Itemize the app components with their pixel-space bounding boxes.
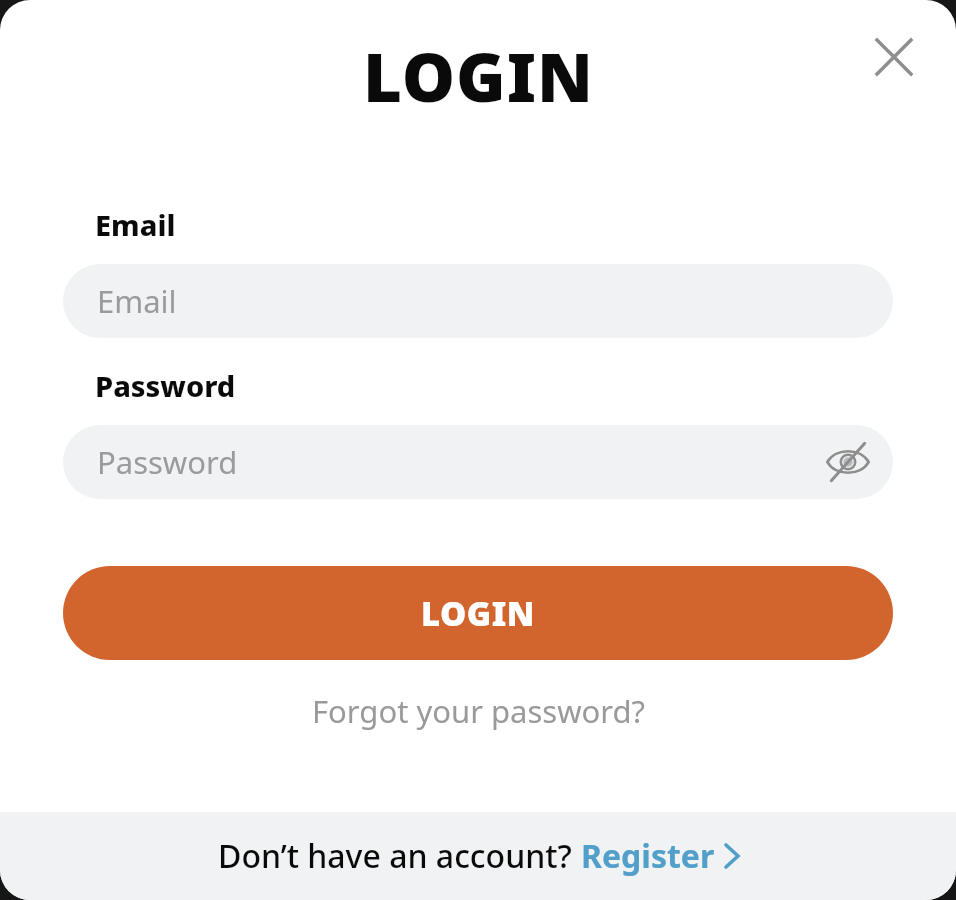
staticText: Register [581, 834, 715, 878]
staticText: Password [97, 441, 238, 483]
button[interactable]: Don’t have an account? [0, 812, 956, 900]
staticText: Email [95, 205, 176, 244]
button[interactable]: Password [63, 425, 893, 499]
button[interactable]: Close [858, 21, 930, 93]
button[interactable]: Email [63, 264, 893, 338]
staticText: Forgot your password? [312, 690, 645, 732]
button[interactable]: LOGIN [63, 566, 893, 660]
staticText: Email [97, 280, 177, 322]
button[interactable]: Forgot your password? [63, 684, 893, 738]
button[interactable]: Show password [815, 429, 881, 495]
staticText: LOGIN [421, 591, 535, 636]
staticText: LOGIN [363, 30, 594, 121]
staticText: Don’t have an account? [218, 834, 581, 878]
staticText: Password [95, 366, 236, 405]
